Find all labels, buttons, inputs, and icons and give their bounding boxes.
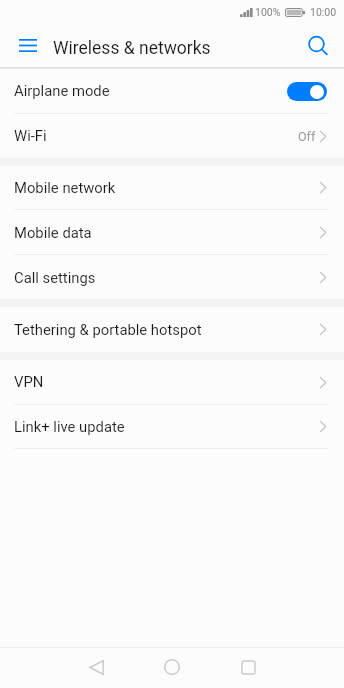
staticText: Call settings (14, 269, 96, 286)
staticText: 10:00 (310, 6, 337, 18)
staticText: Airplane mode (14, 82, 110, 99)
button[interactable]: Back (77, 648, 115, 688)
button[interactable]: Link+ live update (0, 405, 344, 448)
button[interactable]: Airplane mode (0, 69, 344, 113)
button[interactable]: Wi-Fi (0, 114, 344, 158)
staticText: Mobile data (14, 224, 92, 241)
button[interactable]: Search (294, 24, 344, 67)
staticText: Wireless & networks (53, 38, 211, 59)
staticText: Link+ live update (14, 418, 125, 435)
staticText: 100% (255, 6, 281, 18)
button[interactable]: Call settings (0, 255, 344, 299)
button[interactable]: Menu (0, 24, 53, 67)
button[interactable]: Mobile data (0, 210, 344, 254)
button[interactable]: Mobile network (0, 166, 344, 209)
staticText: Wi-Fi (14, 127, 47, 144)
button[interactable]: Recents (229, 648, 267, 688)
staticText: Tethering & portable hotspot (14, 321, 202, 338)
staticText: Mobile network (14, 179, 116, 196)
button[interactable]: Home (153, 648, 191, 688)
button[interactable]: VPN (0, 360, 344, 404)
button[interactable]: Airplane mode toggle (287, 82, 327, 101)
staticText: Off (298, 129, 316, 144)
button[interactable]: Tethering & portable hotspot (0, 307, 344, 352)
staticText: VPN (14, 373, 44, 390)
